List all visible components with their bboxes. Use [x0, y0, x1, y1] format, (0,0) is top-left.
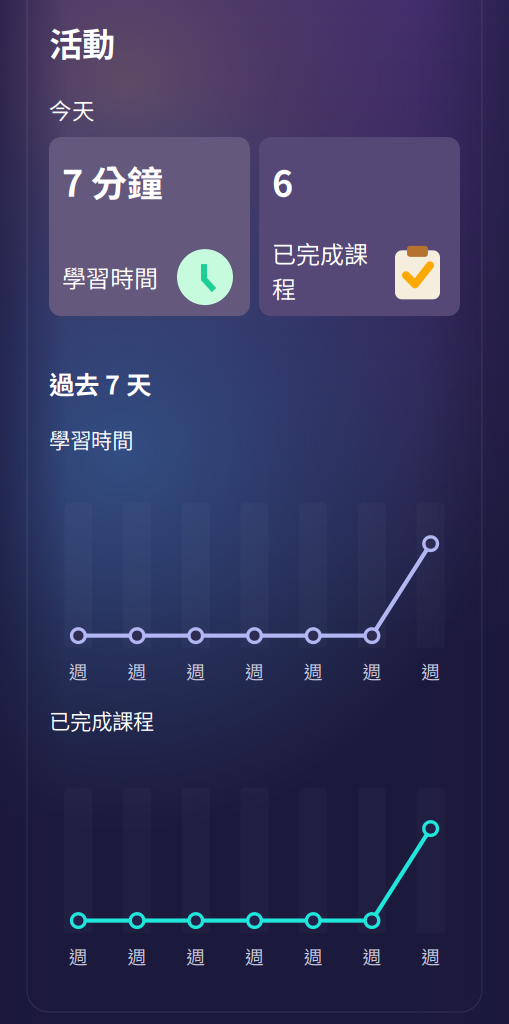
staticText: 已完成課程 — [49, 705, 154, 736]
staticText: 週 — [421, 943, 440, 970]
staticText: 過去 7 天 — [49, 365, 151, 402]
staticText: 週 — [69, 658, 88, 685]
button[interactable]: 6 — [259, 137, 460, 316]
staticText: 週 — [245, 943, 264, 970]
staticText: 週 — [421, 658, 440, 685]
staticText: 週 — [186, 658, 205, 685]
staticText: 今天 — [49, 93, 95, 126]
staticText: 學習時間 — [49, 424, 133, 455]
staticText: 7 分鐘 — [62, 155, 163, 207]
staticText: 週 — [245, 658, 264, 685]
staticText: 週 — [304, 943, 323, 970]
staticText: 6 — [272, 155, 293, 207]
staticText: 週 — [304, 658, 323, 685]
staticText: 活動 — [49, 18, 115, 66]
staticText: 週 — [362, 658, 381, 685]
staticText: 週 — [128, 658, 147, 685]
staticText: 週 — [69, 943, 88, 970]
staticText: 已完成課程 — [272, 236, 368, 305]
staticText: 週 — [128, 943, 147, 970]
staticText: 週 — [186, 943, 205, 970]
staticText: 學習時間 — [62, 260, 158, 294]
button[interactable]: 7 分鐘 — [49, 137, 250, 316]
staticText: 週 — [362, 943, 381, 970]
